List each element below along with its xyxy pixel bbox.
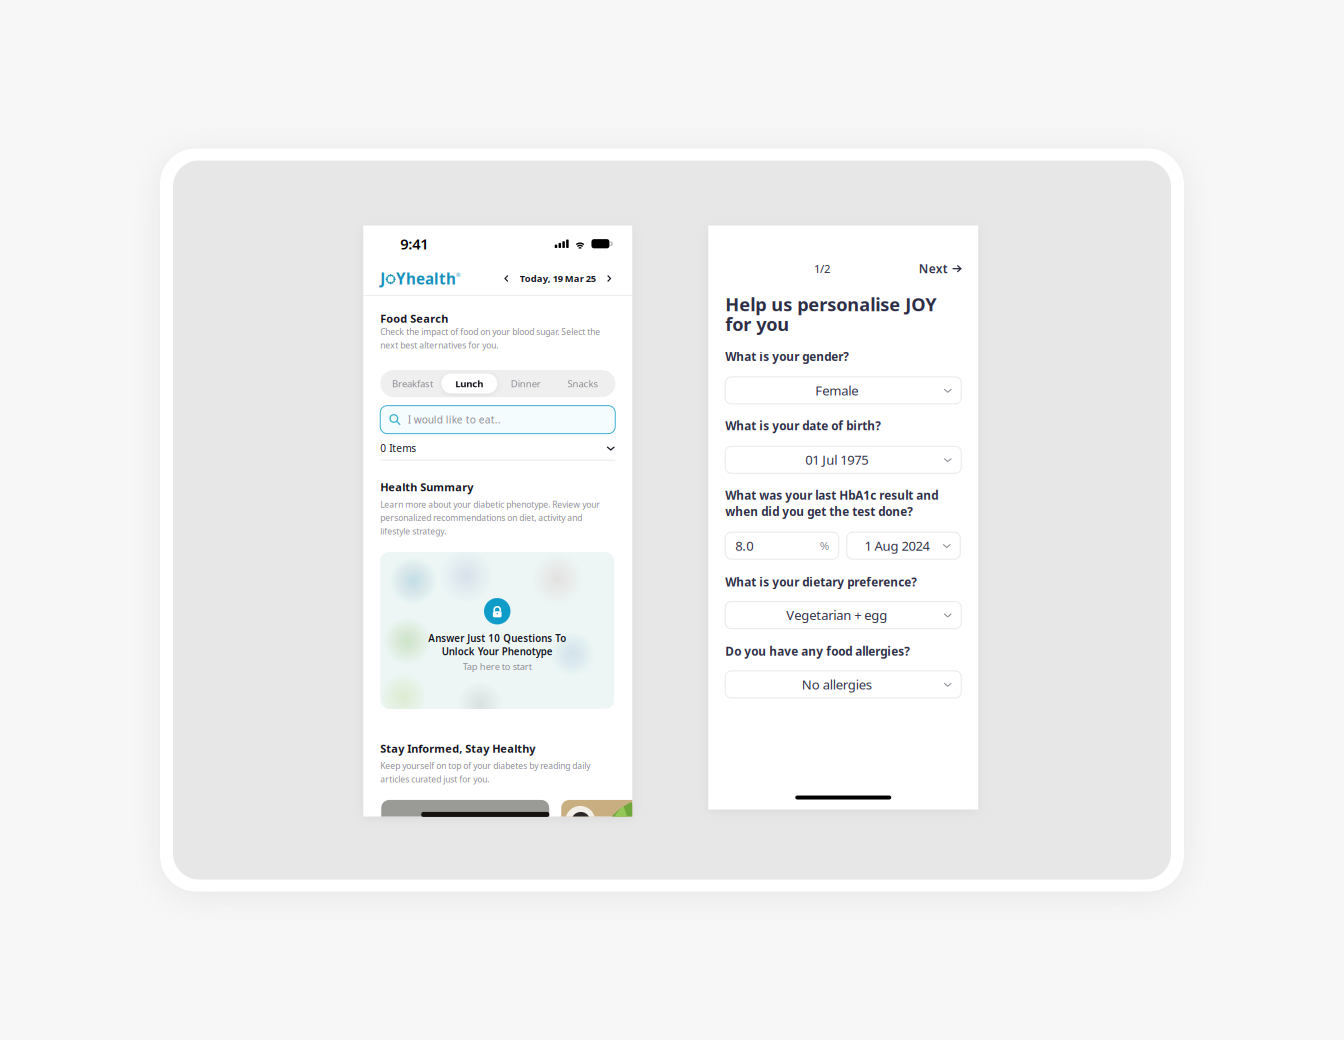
staticText: Help us personalise JOY [725,292,936,316]
button[interactable]: Answer Just 10 Questions To [380,552,614,709]
staticText: What is your dietary preference? [725,574,917,590]
staticText: Lunch [455,377,483,390]
staticText: Check the impact of food on your blood s… [380,326,600,337]
staticText: Today, 19 Mar 25 [520,272,596,285]
button[interactable]: 0 Items [380,437,615,461]
staticText: Food Search [380,311,448,326]
button[interactable]: Next [919,260,961,277]
staticText: Next [919,260,948,277]
staticText: 0 Items [380,441,416,455]
staticText: Answer Just 10 Questions To [428,631,566,645]
button[interactable]: 01 Jul 1975 [725,446,961,473]
staticText: Do you have any food allergies? [725,643,910,659]
staticText: Dinner [511,377,541,390]
button[interactable]: Dinner [497,373,554,393]
staticText: Yhealth [396,268,456,289]
staticText: What is your date of birth? [725,418,881,434]
button[interactable]: 8.0 [725,532,839,559]
staticText: 1/2 [814,261,830,276]
staticText: % [820,538,830,553]
staticText: lifestyle strategy. [380,525,446,537]
staticText: Unlock Your Phenotype [442,645,553,658]
staticText: Snacks [568,377,599,390]
staticText: 8.0 [735,537,753,555]
button[interactable]: Breakfast [384,373,441,393]
staticText: I would like to eat.. [408,413,501,426]
staticText: ® [456,272,460,279]
staticText: articles curated just for you. [380,773,489,785]
staticText: 1 Aug 2024 [864,537,929,555]
staticText: Health Summary [380,480,473,494]
staticText: Keep yourself on top of your diabetes by… [380,760,590,771]
button[interactable]: No allergies [725,671,961,698]
staticText: Female [815,381,858,399]
staticText: J [380,268,385,289]
staticText: No allergies [802,675,872,693]
staticText: Stay Informed, Stay Healthy [380,741,535,756]
button[interactable]: I would like to eat.. [380,406,615,434]
staticText: when did you get the test done? [725,504,913,520]
button[interactable]: Article: healthy food [561,800,651,860]
staticText: What is your gender? [725,348,849,364]
button[interactable]: Lunch [441,373,497,393]
button[interactable]: Article: cooking [381,800,549,860]
staticText: personalized recommendations on diet, ac… [380,512,582,524]
staticText: 01 Jul 1975 [805,451,868,469]
button[interactable]: Previous day [500,271,513,286]
staticText: for you [725,311,789,336]
staticText: Breakfast [392,377,433,390]
staticText: Tap here to start [463,660,532,673]
button[interactable]: Next day [603,271,615,286]
staticText: What was your last HbA1c result and [725,487,938,503]
button[interactable]: Vegetarian + egg [725,601,961,628]
staticText: Learn more about your diabetic phenotype… [380,498,600,510]
staticText: Vegetarian + egg [786,606,887,624]
button[interactable]: Snacks [554,373,612,393]
button[interactable]: Female [725,377,961,404]
staticText: 9:41 [400,234,428,254]
staticText: next best alternatives for you. [380,339,498,351]
button[interactable]: 1 Aug 2024 [847,532,960,559]
